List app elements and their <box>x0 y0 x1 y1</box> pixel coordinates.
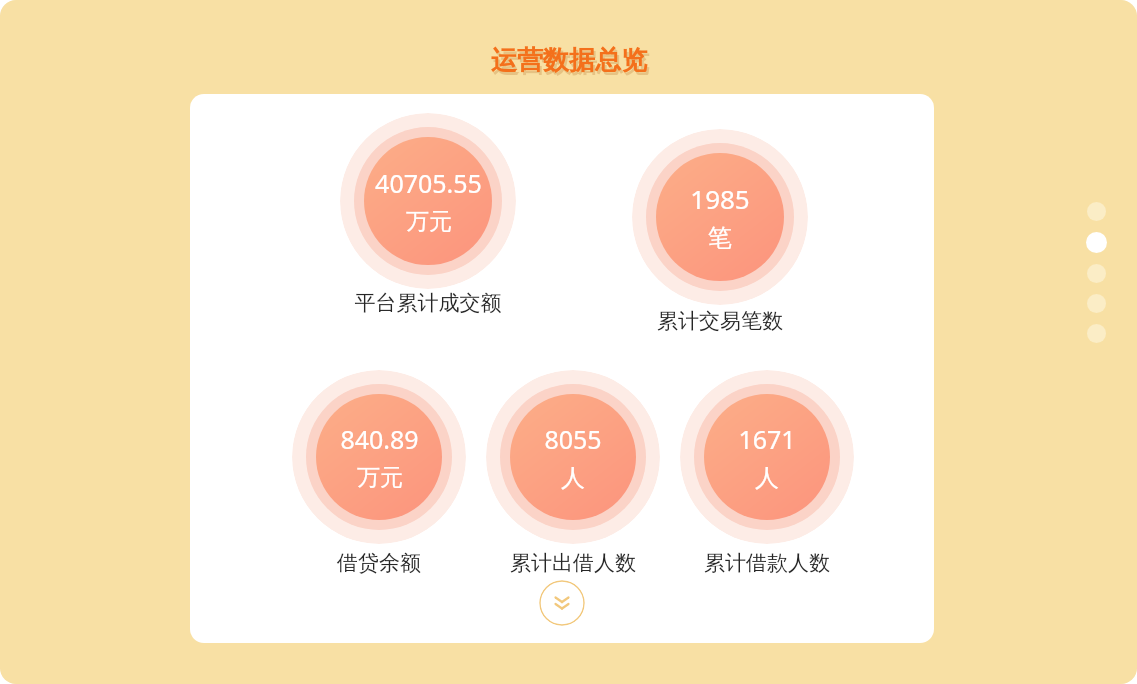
staticText: 840.89 <box>340 422 419 456</box>
staticText: 运营数据总览 <box>491 44 647 77</box>
button[interactable]: 分页 1 <box>1087 202 1106 221</box>
staticText: 累计交易笔数 <box>657 308 783 334</box>
staticText: 平台累计成交额 <box>352 290 504 316</box>
button[interactable]: 840.89 <box>292 370 466 544</box>
staticText: 人 <box>755 463 779 493</box>
staticText: 1671 <box>738 422 796 456</box>
staticText: 人 <box>561 463 585 493</box>
staticText: 累计借款人数 <box>704 550 830 576</box>
button[interactable]: 分页 5 <box>1087 324 1106 343</box>
staticText: 运营数据总览 <box>493 47 649 80</box>
staticText: 8055 <box>544 422 602 456</box>
staticText: 累计出借人数 <box>510 550 636 576</box>
staticText: 笔 <box>708 223 732 253</box>
button[interactable]: 展开更多 <box>539 580 585 626</box>
button[interactable]: 分页 3 <box>1087 264 1106 283</box>
button[interactable]: 40705.55 <box>340 113 516 289</box>
staticText: 万元 <box>357 463 403 492</box>
staticText: 借贷余额 <box>337 550 421 576</box>
staticText: 万元 <box>406 207 452 236</box>
button[interactable]: 8055 <box>486 370 660 544</box>
button[interactable]: 分页 2 <box>1086 232 1107 253</box>
staticText: 40705.55 <box>375 166 482 200</box>
staticText: 1985 <box>690 181 750 216</box>
button[interactable]: 1671 <box>680 370 854 544</box>
button[interactable]: 1985 <box>632 129 808 305</box>
button[interactable]: 分页 4 <box>1087 294 1106 313</box>
